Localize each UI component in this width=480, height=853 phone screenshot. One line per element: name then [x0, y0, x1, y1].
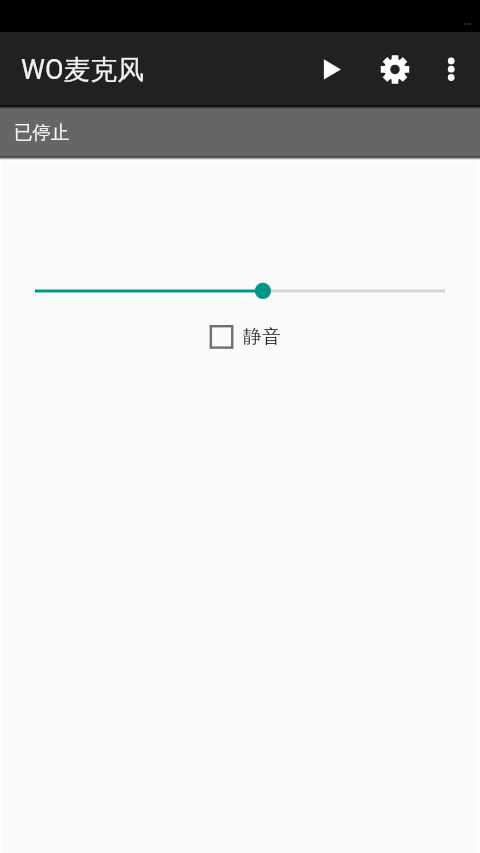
staticText: 已停止	[14, 121, 70, 144]
button[interactable]: More options	[427, 44, 475, 92]
staticText: 静音	[243, 325, 281, 349]
button[interactable]: Volume slider	[20, 272, 460, 310]
button[interactable]: Play	[308, 44, 356, 92]
button[interactable]: 静音	[205, 320, 281, 354]
button[interactable]: Settings	[371, 44, 419, 92]
staticText: WO麦克风	[21, 53, 145, 87]
